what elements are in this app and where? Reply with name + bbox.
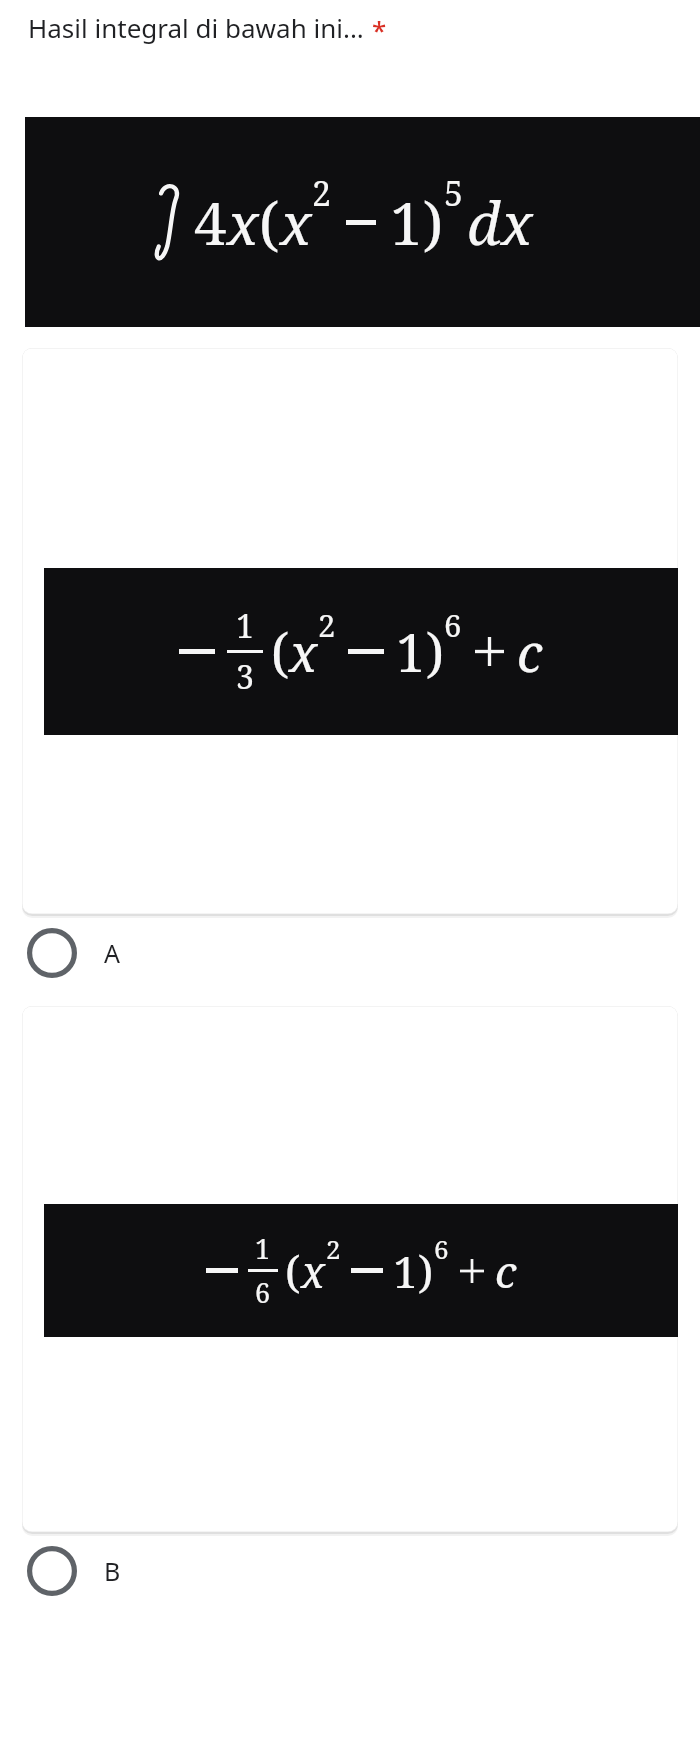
staticText: ) bbox=[426, 616, 444, 687]
staticText: x bbox=[289, 616, 318, 687]
button[interactable]: Select option A bbox=[0, 914, 700, 992]
staticText: Hasil integral di bawah ini... bbox=[28, 10, 364, 45]
staticText: 3 bbox=[236, 655, 254, 699]
button[interactable]: 1 bbox=[22, 1006, 678, 1532]
staticText: 2 bbox=[312, 170, 332, 216]
staticText: 6 bbox=[434, 1231, 449, 1266]
staticText: c bbox=[495, 1241, 517, 1301]
staticText: 1 bbox=[396, 616, 426, 687]
staticText: 2 bbox=[326, 1231, 341, 1266]
staticText: x bbox=[501, 183, 533, 262]
staticText: * bbox=[372, 12, 387, 47]
staticText: 6 bbox=[444, 604, 462, 646]
staticText: 1 bbox=[236, 604, 254, 648]
staticText: ( bbox=[285, 1241, 301, 1301]
staticText: ( bbox=[259, 183, 280, 262]
staticText: A bbox=[104, 936, 120, 970]
staticText: d bbox=[467, 183, 501, 262]
other: Select option A bbox=[27, 928, 77, 978]
staticText: x bbox=[227, 183, 259, 262]
staticText: 2 bbox=[318, 604, 336, 646]
staticText: ) bbox=[418, 1241, 434, 1301]
staticText: x bbox=[280, 183, 312, 262]
staticText: 1 bbox=[393, 1241, 418, 1301]
button[interactable]: 1 bbox=[22, 348, 678, 914]
staticText: ( bbox=[271, 616, 289, 687]
staticText: ) bbox=[423, 183, 444, 262]
staticText: 4 bbox=[194, 183, 227, 262]
staticText: 6 bbox=[255, 1274, 271, 1311]
staticText: B bbox=[104, 1554, 121, 1588]
staticText: 1 bbox=[390, 183, 423, 262]
staticText: c bbox=[517, 616, 543, 687]
staticText: 1 bbox=[255, 1230, 271, 1267]
staticText: x bbox=[301, 1241, 326, 1301]
staticText: 5 bbox=[444, 170, 464, 216]
other: Select option B bbox=[27, 1546, 77, 1596]
button[interactable]: Select option B bbox=[0, 1532, 700, 1610]
